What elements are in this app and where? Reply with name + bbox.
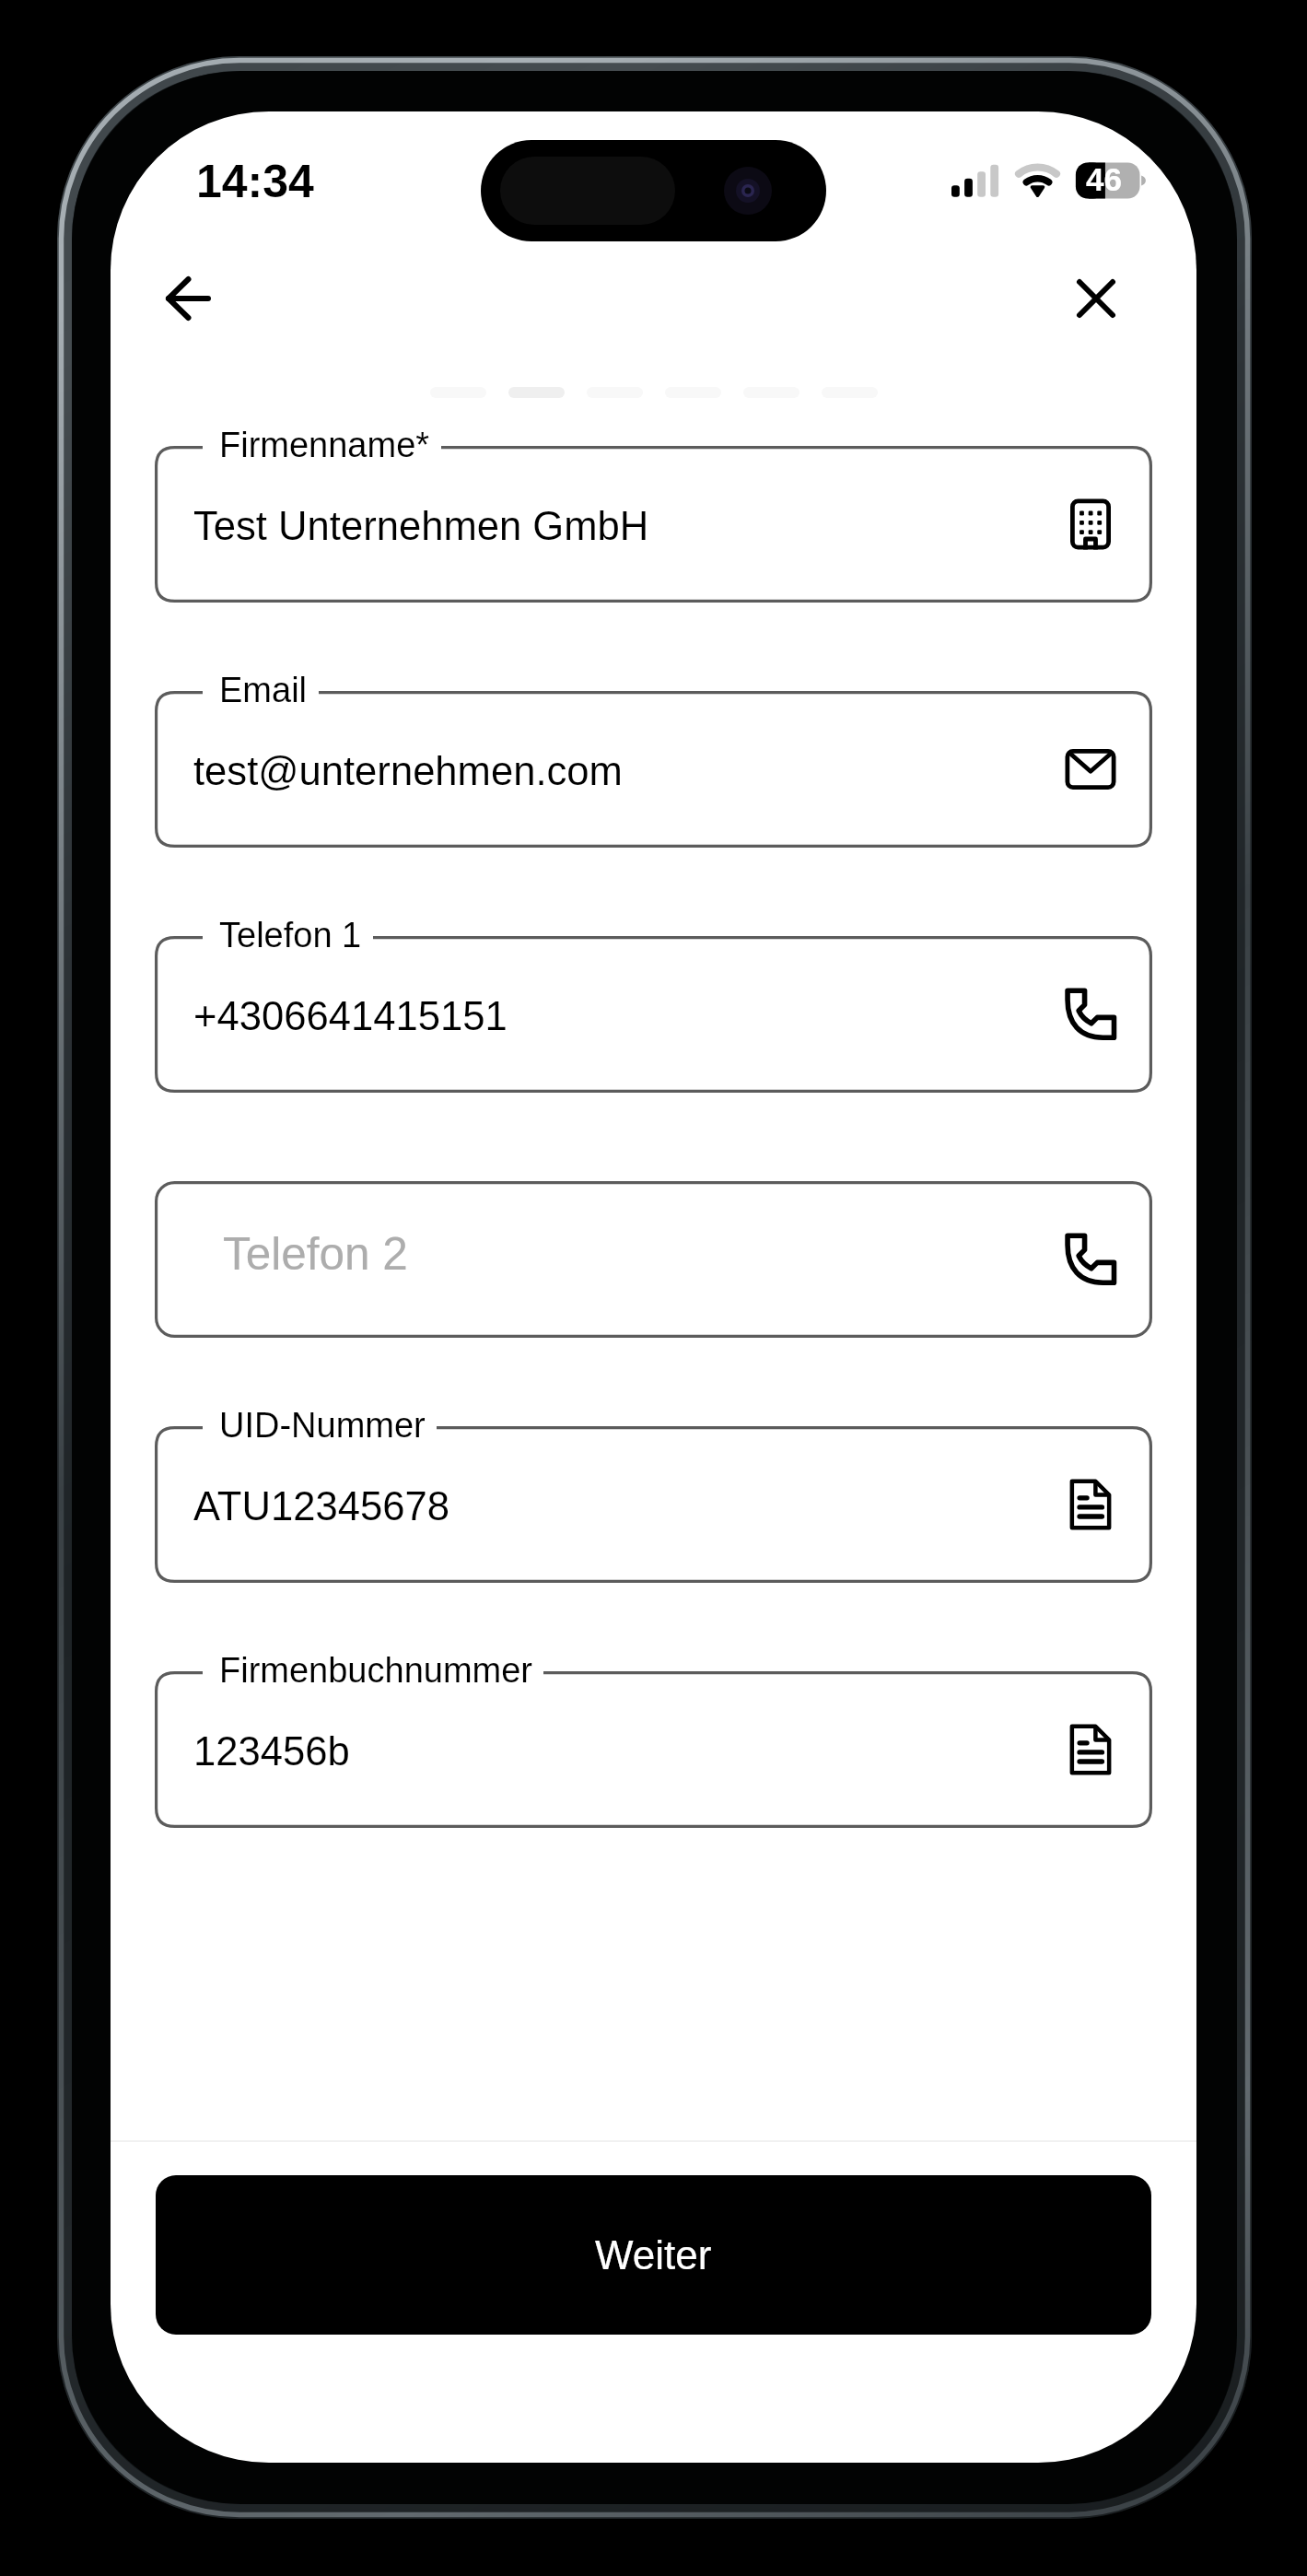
staticText: Telefon 2: [223, 1228, 408, 1279]
button[interactable]: Telefon 2: [155, 1181, 1152, 1338]
button[interactable]: Firmenname*: [155, 446, 1152, 603]
staticText: Test Unternehmen GmbH: [193, 504, 649, 549]
button[interactable]: Back: [133, 243, 243, 354]
staticText: 123456b: [193, 1729, 350, 1774]
button[interactable]: Close: [1041, 243, 1151, 354]
button[interactable]: UID-Nummer: [155, 1426, 1152, 1583]
button[interactable]: Firmenbuchnummer: [155, 1671, 1152, 1828]
staticText: Email: [219, 671, 308, 709]
staticText: Telefon 1: [219, 916, 362, 954]
button[interactable]: Telefon 1: [155, 936, 1152, 1093]
staticText: test@unternehmen.com: [193, 749, 623, 794]
staticText: +4306641415151: [193, 994, 508, 1039]
staticText: UID-Nummer: [219, 1406, 426, 1445]
staticText: ATU12345678: [193, 1484, 449, 1529]
staticText: Firmenbuchnummer: [219, 1651, 532, 1690]
button[interactable]: Weiter: [156, 2175, 1151, 2335]
staticText: Firmenname*: [219, 426, 430, 464]
button[interactable]: Email: [155, 691, 1152, 848]
staticText: 46: [1086, 161, 1122, 197]
staticText: 14:34: [196, 156, 314, 207]
staticText: Weiter: [595, 2232, 712, 2277]
